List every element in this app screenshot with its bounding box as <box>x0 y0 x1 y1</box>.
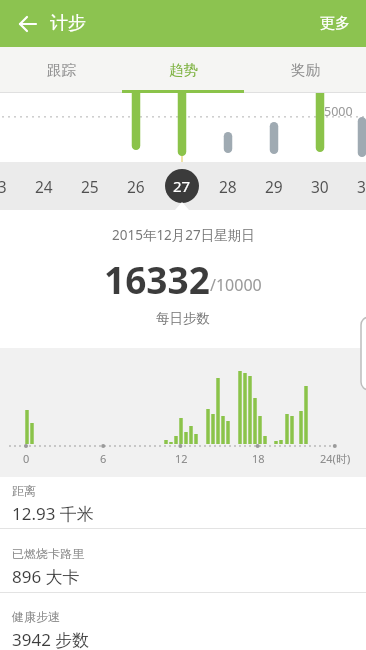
staticText: 30 <box>311 176 329 197</box>
staticText: 24(时) <box>320 451 351 466</box>
button[interactable]: 健康步速 <box>0 593 366 650</box>
staticText: 26 <box>127 176 145 197</box>
staticText: 31 <box>357 176 366 197</box>
staticText: 5000 <box>324 103 353 120</box>
staticText: 计步 <box>50 12 86 35</box>
button[interactable]: 距离 <box>0 477 366 528</box>
staticText: 2015年12月27日星期日 <box>112 226 255 244</box>
button[interactable]: 30 <box>300 176 340 197</box>
staticText: 16332 <box>104 254 210 304</box>
staticText: 25 <box>81 176 99 197</box>
staticText: 12.93 千米 <box>12 502 94 525</box>
staticText: 健康步速 <box>12 609 60 624</box>
button[interactable]: 趋势 <box>122 47 244 93</box>
staticText: 6 <box>100 451 107 466</box>
button[interactable]: 更多 <box>316 10 354 37</box>
staticText: 每日步数 <box>156 310 210 327</box>
staticText: 已燃烧卡路里 <box>12 546 84 561</box>
staticText: 27 <box>173 176 191 196</box>
button[interactable] <box>12 8 44 40</box>
staticText: 0 <box>23 451 30 466</box>
staticText: 距离 <box>12 483 36 498</box>
staticText: 更多 <box>320 14 350 33</box>
staticText: 3942 步数 <box>12 628 90 650</box>
staticText: 奖励 <box>291 61 320 79</box>
staticText: 12 <box>175 451 188 466</box>
button[interactable]: 奖励 <box>244 47 366 93</box>
staticText: 18 <box>252 451 265 466</box>
button[interactable]: 31 <box>346 176 366 197</box>
button[interactable]: 25 <box>70 176 110 197</box>
button[interactable]: 29 <box>254 176 294 197</box>
staticText: 23 <box>0 176 7 197</box>
staticText: 跟踪 <box>47 61 76 79</box>
button[interactable]: 跟踪 <box>0 47 122 93</box>
staticText: 趋势 <box>169 61 198 79</box>
staticText: 24 <box>35 176 53 197</box>
staticText: 29 <box>265 176 283 197</box>
staticText: /10000 <box>210 274 262 296</box>
button[interactable]: 已燃烧卡路里 <box>0 529 366 592</box>
button[interactable]: 27 <box>165 169 199 203</box>
staticText: 28 <box>219 176 237 197</box>
staticText: 896 大卡 <box>12 565 80 588</box>
button[interactable]: 23 <box>0 176 18 197</box>
button[interactable]: 26 <box>116 176 156 197</box>
button[interactable]: 28 <box>208 176 248 197</box>
button[interactable]: 24 <box>24 176 64 197</box>
